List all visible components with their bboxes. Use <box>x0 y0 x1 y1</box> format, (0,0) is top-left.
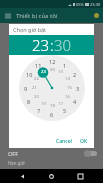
staticText: 22 <box>34 76 39 82</box>
staticText: 17 <box>58 101 63 107</box>
button[interactable]: OFF <box>8 147 97 160</box>
staticText: Thiết bị của tôi <box>16 12 58 20</box>
staticText: 16 <box>65 94 70 100</box>
staticText: Hẹn giờ <box>8 160 25 166</box>
staticText: 10 <box>26 71 33 78</box>
button[interactable]: 23 <box>32 35 50 55</box>
staticText: 15 <box>67 85 72 91</box>
staticText: 13 <box>58 69 63 75</box>
staticText: : <box>50 35 54 55</box>
staticText: 8 <box>27 98 31 105</box>
staticText: 9 <box>24 85 28 92</box>
button[interactable]: Home <box>45 170 58 183</box>
button[interactable]: OK <box>78 136 90 147</box>
staticText: Chọn giờ bật <box>13 26 47 33</box>
staticText: 1 <box>63 62 67 69</box>
staticText: 2 <box>73 71 77 78</box>
staticText: OFF <box>8 150 19 157</box>
staticText: 7 <box>37 107 41 114</box>
button[interactable]: Recent apps <box>74 170 87 183</box>
staticText: 65% <box>76 2 84 7</box>
staticText: 18 <box>50 103 55 109</box>
staticText: 5 <box>63 107 67 114</box>
staticText: 23 <box>41 69 46 75</box>
staticText: 6 <box>50 111 54 118</box>
staticText: 12 <box>49 58 56 65</box>
button[interactable]: Cancel <box>54 136 74 147</box>
staticText: 21 <box>32 85 37 91</box>
staticText: 19 <box>41 101 46 107</box>
staticText: Cancel <box>56 138 72 145</box>
button[interactable]: Back <box>16 170 29 183</box>
staticText: 4 <box>73 98 77 105</box>
staticText: 23:30 <box>90 2 101 7</box>
button[interactable]: Connection status <box>94 13 99 18</box>
button[interactable]: Open navigation menu <box>3 11 12 20</box>
staticText: 11 <box>35 62 42 69</box>
button[interactable]: 30 <box>54 35 72 55</box>
staticText: OK <box>80 138 88 145</box>
staticText: 20 <box>34 94 39 100</box>
staticText: 00 <box>50 67 55 73</box>
button[interactable]: 12 <box>19 55 85 121</box>
staticText: 14 <box>65 76 70 82</box>
staticText: 3 <box>76 85 80 92</box>
